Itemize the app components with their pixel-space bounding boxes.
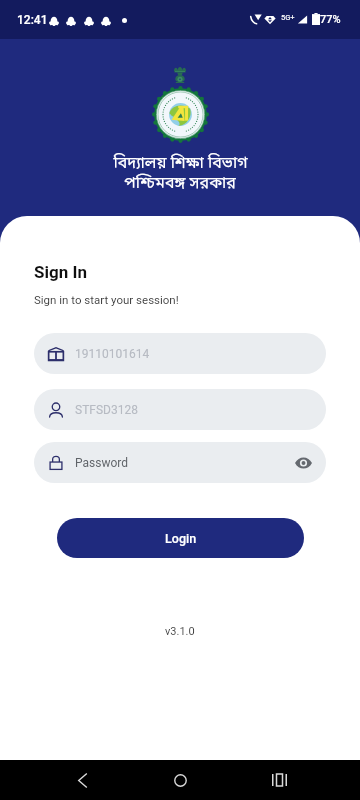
button[interactable]: Login xyxy=(57,518,304,558)
staticText: v3.1.0 xyxy=(165,625,195,638)
button[interactable]: Home xyxy=(163,763,197,797)
staticText: Password xyxy=(75,456,129,470)
button[interactable]: Recents xyxy=(262,763,296,797)
button[interactable]: Show password xyxy=(290,450,316,476)
staticText: বিদ্যালয় শিক্ষা বিভাগ xyxy=(113,153,248,174)
staticText: 12:41 xyxy=(17,13,48,27)
staticText: Sign in to start your session! xyxy=(34,293,179,306)
button[interactable]: 19110101614 xyxy=(34,333,326,374)
staticText: STFSD3128 xyxy=(75,403,138,417)
staticText: 19110101614 xyxy=(75,347,150,361)
staticText: 5G+ xyxy=(281,13,295,22)
staticText: 77% xyxy=(320,13,341,26)
staticText: Login xyxy=(165,531,197,546)
staticText: Sign In xyxy=(34,262,87,282)
button[interactable]: STFSD3128 xyxy=(34,389,326,430)
staticText: পশ্চিমবঙ্গ সরকার xyxy=(124,173,236,194)
button[interactable]: Back xyxy=(65,763,99,797)
button[interactable]: Password xyxy=(34,442,326,483)
